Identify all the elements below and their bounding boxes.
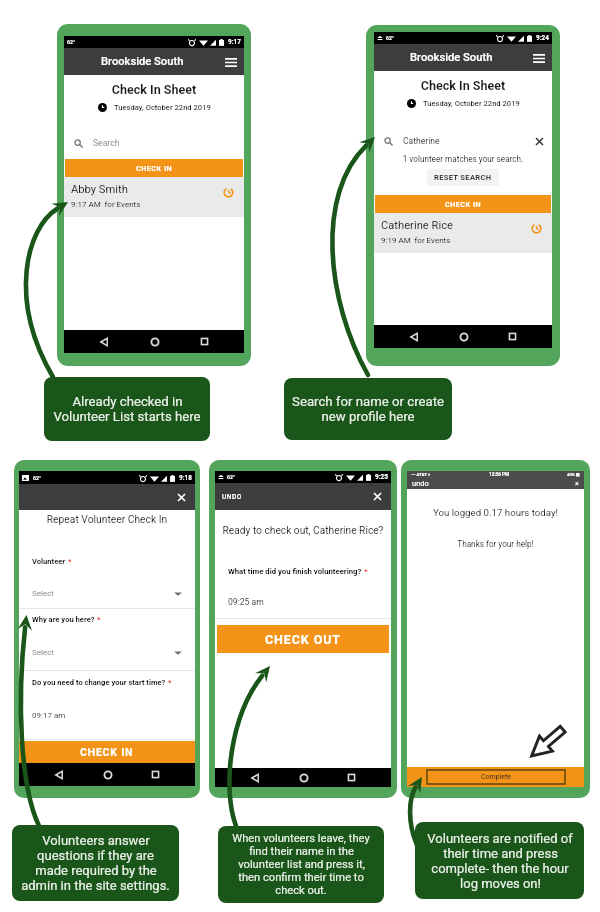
button[interactable]: Catherine xyxy=(378,131,548,151)
button[interactable]: Menu xyxy=(532,51,546,65)
staticText: CHECK IN xyxy=(445,200,482,208)
staticText: Search xyxy=(93,138,120,148)
staticText: 09:25 am xyxy=(228,597,264,607)
staticText: Volunteer xyxy=(32,557,66,566)
staticText: Brookside South xyxy=(101,55,184,68)
staticText: Already checked in xyxy=(72,394,183,409)
staticText: When volunteers leave, they xyxy=(232,832,370,845)
button[interactable]: Back xyxy=(99,337,109,347)
staticText: Ready to check out, Catherine Rice? xyxy=(215,525,391,537)
button[interactable]: CHECK IN xyxy=(375,195,551,213)
button[interactable]: Search xyxy=(68,133,240,153)
staticText: admin in the site settings. xyxy=(21,878,170,893)
staticText: complete- then the hour xyxy=(431,861,569,876)
staticText: 62° xyxy=(33,475,41,481)
staticText: Catherine Rice xyxy=(381,219,453,232)
staticText: Tuesday, October 22nd 2019 xyxy=(114,103,211,112)
staticText: Select xyxy=(32,589,54,598)
button[interactable]: Close xyxy=(374,493,381,500)
staticText: 12:36 PM xyxy=(489,472,509,477)
button[interactable]: Menu xyxy=(224,55,238,69)
staticText: check out. xyxy=(275,884,327,897)
staticText: * xyxy=(364,567,368,576)
staticText: find their name in the xyxy=(249,845,354,858)
staticText: 40% ■ xyxy=(567,472,580,477)
staticText: Check In Sheet xyxy=(374,78,552,93)
staticText: new profile here xyxy=(321,409,415,424)
staticText: Catherine xyxy=(403,136,440,146)
staticText: CHECK IN xyxy=(136,164,173,172)
staticText: 09:17 am xyxy=(32,711,66,720)
button[interactable]: Recents xyxy=(200,337,209,346)
staticText: * xyxy=(97,615,101,624)
staticText: Repeat Volunteer Check In xyxy=(19,513,195,525)
staticText: questions if they are xyxy=(37,848,154,863)
button[interactable]: Back xyxy=(409,332,419,342)
staticText: Volunteer List starts here xyxy=(53,409,201,424)
staticText: their time and press xyxy=(443,846,558,861)
button[interactable]: Back xyxy=(54,770,64,780)
button[interactable]: Abby Smith xyxy=(64,177,244,217)
staticText: * xyxy=(168,678,172,687)
staticText: made required by the xyxy=(35,863,157,878)
staticText: Tuesday, October 22nd 2019 xyxy=(423,99,520,108)
button[interactable]: RESET SEARCH xyxy=(434,173,492,182)
button[interactable]: Complete xyxy=(407,767,584,787)
staticText: You logged 0.17 hours today! xyxy=(407,507,584,518)
staticText: then confirm their time to xyxy=(238,871,364,884)
button[interactable]: Recents xyxy=(347,773,356,782)
button[interactable]: CHECK IN xyxy=(19,741,195,763)
button[interactable]: Back xyxy=(250,773,260,783)
button[interactable]: Search for name or create xyxy=(284,378,452,440)
staticText: Complete xyxy=(481,773,512,781)
staticText: Abby Smith xyxy=(71,183,128,196)
staticText: 1 volunteer matches your search. xyxy=(374,154,552,164)
button[interactable]: Home xyxy=(299,773,309,783)
staticText: volunteer list and press it, xyxy=(238,858,365,871)
staticText: Do you need to change your start time? xyxy=(32,678,166,687)
staticText: Search for name or create xyxy=(292,394,444,409)
staticText: UNDO xyxy=(222,493,242,501)
button[interactable]: Recents xyxy=(151,770,160,779)
staticText: CHECK IN xyxy=(80,746,134,758)
staticText: * xyxy=(68,557,72,566)
staticText: Brookside South xyxy=(410,51,493,64)
button[interactable]: CHECK IN xyxy=(65,159,243,177)
button[interactable]: CHECK OUT xyxy=(217,625,389,653)
staticText: 62° xyxy=(386,35,394,41)
staticText: Why are you here? xyxy=(32,615,95,624)
button[interactable]: Already checked in xyxy=(44,377,210,441)
staticText: × xyxy=(575,480,579,488)
staticText: Volunteers are notified of xyxy=(427,831,573,846)
staticText: CHECK OUT xyxy=(265,632,341,647)
button[interactable]: Clear search xyxy=(536,138,543,145)
staticText: Check In Sheet xyxy=(64,82,244,97)
staticText: 9:17 xyxy=(228,38,241,46)
staticText: 9:17 AM for Events xyxy=(71,200,141,209)
staticText: Volunteers answer xyxy=(42,833,150,848)
button[interactable]: Recents xyxy=(508,332,517,341)
staticText: 9:19 AM for Events xyxy=(381,236,451,245)
button[interactable]: Volunteers answer xyxy=(12,825,179,901)
button[interactable]: Close xyxy=(178,494,185,501)
staticText: undo xyxy=(412,479,429,488)
staticText: ••• AT&T ▾ xyxy=(411,472,431,477)
button[interactable]: Home xyxy=(103,770,113,780)
button[interactable]: Catherine Rice xyxy=(374,213,552,253)
button[interactable]: Home xyxy=(459,332,469,342)
staticText: RESET SEARCH xyxy=(434,173,492,182)
staticText: 9:18 xyxy=(179,474,192,482)
button[interactable]: Volunteers are notified of xyxy=(415,822,584,899)
staticText: 62° xyxy=(227,474,235,480)
staticText: 9:24 xyxy=(536,34,549,42)
staticText: 62° xyxy=(67,39,75,45)
staticText: What time did you finish volunteering? xyxy=(228,567,362,576)
staticText: Thanks for your help! xyxy=(407,539,584,549)
button[interactable]: Home xyxy=(150,337,160,347)
button[interactable]: When volunteers leave, they xyxy=(218,826,384,903)
staticText: Select xyxy=(32,648,54,657)
staticText: 9:25 xyxy=(375,473,388,481)
staticText: log moves on! xyxy=(460,876,541,891)
